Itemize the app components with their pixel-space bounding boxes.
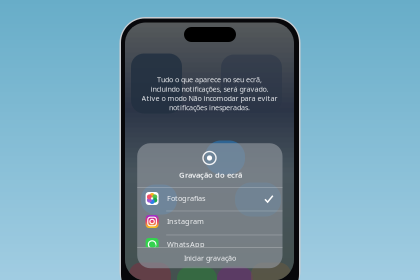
staticText: Fotografias <box>167 193 206 203</box>
staticText: Gravação do ecrã <box>179 169 242 180</box>
staticText: incluindo notificações, será gravado. <box>150 84 268 94</box>
staticText: Ative o modo Não incomodar para evitar <box>141 93 277 103</box>
staticText: WhatsApp <box>167 239 205 249</box>
staticText: Iniciar gravação <box>184 253 236 263</box>
staticText: Tudo o que aparece no seu ecrã, <box>157 75 262 84</box>
staticText: Instagram <box>167 216 204 226</box>
staticText: notificações inesperadas. <box>169 103 250 112</box>
